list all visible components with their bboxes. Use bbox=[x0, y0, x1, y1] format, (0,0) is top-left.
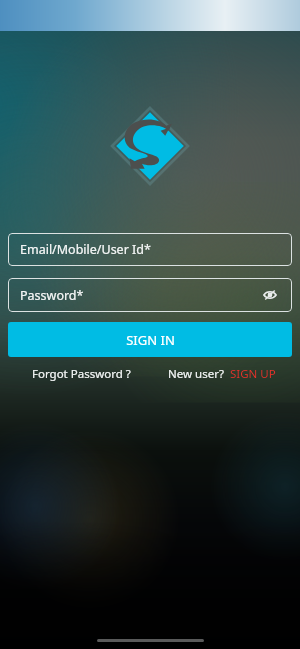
button[interactable]: SIGN IN bbox=[8, 322, 292, 357]
button[interactable]: SIGN UP bbox=[224, 364, 292, 384]
button[interactable]: Forgot Password ? bbox=[8, 364, 135, 384]
staticText: New user? bbox=[168, 366, 224, 382]
button[interactable]: Email/Mobile/User Id* bbox=[8, 233, 292, 266]
button[interactable]: Show password bbox=[260, 285, 280, 305]
button[interactable]: Password* bbox=[8, 278, 292, 312]
staticText: Password* bbox=[20, 287, 84, 304]
staticText: Forgot Password ? bbox=[32, 366, 131, 382]
staticText: SIGN IN bbox=[126, 331, 175, 349]
staticText: SIGN UP bbox=[230, 366, 276, 382]
staticText: Email/Mobile/User Id* bbox=[20, 241, 151, 258]
